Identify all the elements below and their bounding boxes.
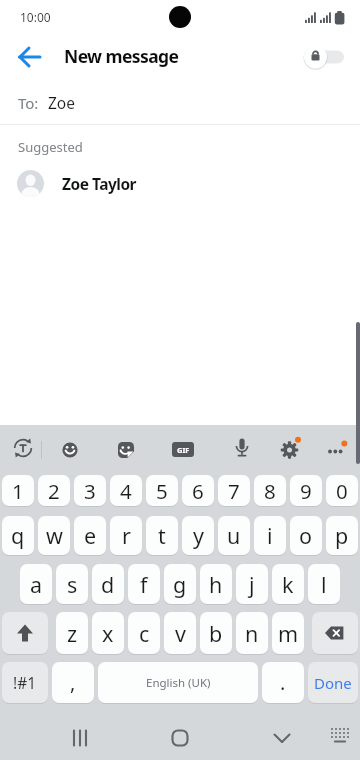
button[interactable] — [327, 722, 353, 748]
button[interactable]: 3 — [74, 475, 106, 506]
button[interactable] — [164, 722, 196, 754]
button[interactable]: Done — [308, 662, 358, 703]
staticText: . — [280, 669, 286, 696]
button[interactable]: c — [128, 612, 160, 654]
staticText: o — [299, 521, 313, 550]
button[interactable]: x — [92, 612, 124, 654]
button[interactable]: 6 — [182, 475, 214, 506]
button[interactable] — [228, 435, 256, 463]
button[interactable]: f — [128, 564, 160, 604]
staticText: !#1 — [13, 672, 37, 693]
button[interactable]: l — [308, 564, 340, 604]
button[interactable]: j — [236, 564, 268, 604]
button[interactable]: u — [218, 516, 250, 555]
staticText: c — [139, 619, 150, 648]
button[interactable] — [64, 722, 96, 754]
button[interactable]: a — [20, 564, 52, 604]
button[interactable]: w — [38, 516, 70, 555]
button[interactable] — [322, 435, 350, 463]
button[interactable]: 8 — [254, 475, 286, 506]
button[interactable]: e — [74, 516, 106, 555]
button[interactable] — [56, 436, 84, 464]
staticText: Zoe Taylor — [62, 173, 137, 194]
button[interactable] — [276, 435, 304, 463]
staticText: h — [209, 570, 223, 599]
button[interactable]: z — [56, 612, 88, 654]
button[interactable]: 1 — [2, 475, 34, 506]
button[interactable]: !#1 — [2, 662, 48, 703]
staticText: r — [122, 521, 131, 550]
staticText: v — [175, 619, 186, 648]
staticText: 3 — [84, 477, 96, 505]
button[interactable]: 2 — [38, 475, 70, 506]
button[interactable]: English (UK) — [98, 662, 258, 703]
staticText: x — [102, 619, 114, 648]
button[interactable]: n — [236, 612, 268, 654]
staticText: y — [193, 521, 204, 550]
button[interactable]: 0 — [326, 475, 358, 506]
staticText: n — [245, 619, 259, 648]
staticText: q — [11, 521, 25, 550]
button[interactable]: 4 — [110, 475, 142, 506]
button[interactable]: m — [272, 612, 304, 654]
staticText: u — [227, 521, 241, 550]
staticText: 1 — [12, 477, 24, 505]
staticText: b — [209, 619, 223, 648]
staticText: a — [30, 570, 43, 599]
staticText: z — [67, 619, 78, 648]
staticText: w — [46, 521, 63, 550]
button[interactable]: 9 — [290, 475, 322, 506]
button[interactable]: r — [110, 516, 142, 555]
staticText: New message — [64, 44, 179, 68]
button[interactable]: i — [254, 516, 286, 555]
button[interactable] — [12, 39, 48, 75]
button[interactable]: 5 — [146, 475, 178, 506]
staticText: t — [158, 521, 166, 550]
staticText: m — [278, 619, 299, 648]
button[interactable] — [9, 434, 37, 462]
staticText: f — [140, 570, 148, 599]
button[interactable]: g — [164, 564, 196, 604]
button[interactable]: q — [2, 516, 34, 555]
staticText: Done — [314, 673, 352, 693]
button[interactable] — [312, 612, 358, 654]
button[interactable] — [266, 722, 298, 754]
staticText: 6 — [192, 477, 204, 505]
button[interactable]: s — [56, 564, 88, 604]
button[interactable]: t — [146, 516, 178, 555]
staticText: Zoe — [48, 92, 75, 113]
staticText: 5 — [156, 477, 168, 505]
staticText: i — [267, 521, 273, 550]
staticText: j — [249, 570, 255, 599]
staticText: 8 — [264, 477, 276, 505]
button[interactable] — [2, 612, 48, 654]
button[interactable]: Zoe Taylor — [0, 160, 360, 206]
staticText: s — [67, 570, 78, 599]
button[interactable] — [302, 44, 350, 70]
button[interactable]: 7 — [218, 475, 250, 506]
staticText: e — [84, 521, 97, 550]
button[interactable]: b — [200, 612, 232, 654]
button[interactable]: p — [326, 516, 358, 555]
staticText: 9 — [300, 477, 312, 505]
button[interactable]: y — [182, 516, 214, 555]
staticText: 7 — [228, 477, 240, 505]
button[interactable]: GIF — [172, 442, 194, 457]
button[interactable]: To: — [0, 80, 360, 125]
button[interactable]: , — [52, 662, 94, 703]
button[interactable]: v — [164, 612, 196, 654]
staticText: , — [70, 669, 76, 696]
button[interactable] — [112, 436, 140, 464]
staticText: Suggested — [18, 138, 83, 156]
staticText: 2 — [48, 477, 60, 505]
staticText: g — [173, 570, 187, 599]
staticText: To: — [18, 93, 39, 113]
button[interactable]: k — [272, 564, 304, 604]
staticText: p — [335, 521, 349, 550]
button[interactable]: o — [290, 516, 322, 555]
staticText: k — [282, 570, 294, 599]
button[interactable]: h — [200, 564, 232, 604]
button[interactable]: . — [262, 662, 304, 703]
button[interactable]: d — [92, 564, 124, 604]
staticText: GIF — [177, 445, 190, 455]
